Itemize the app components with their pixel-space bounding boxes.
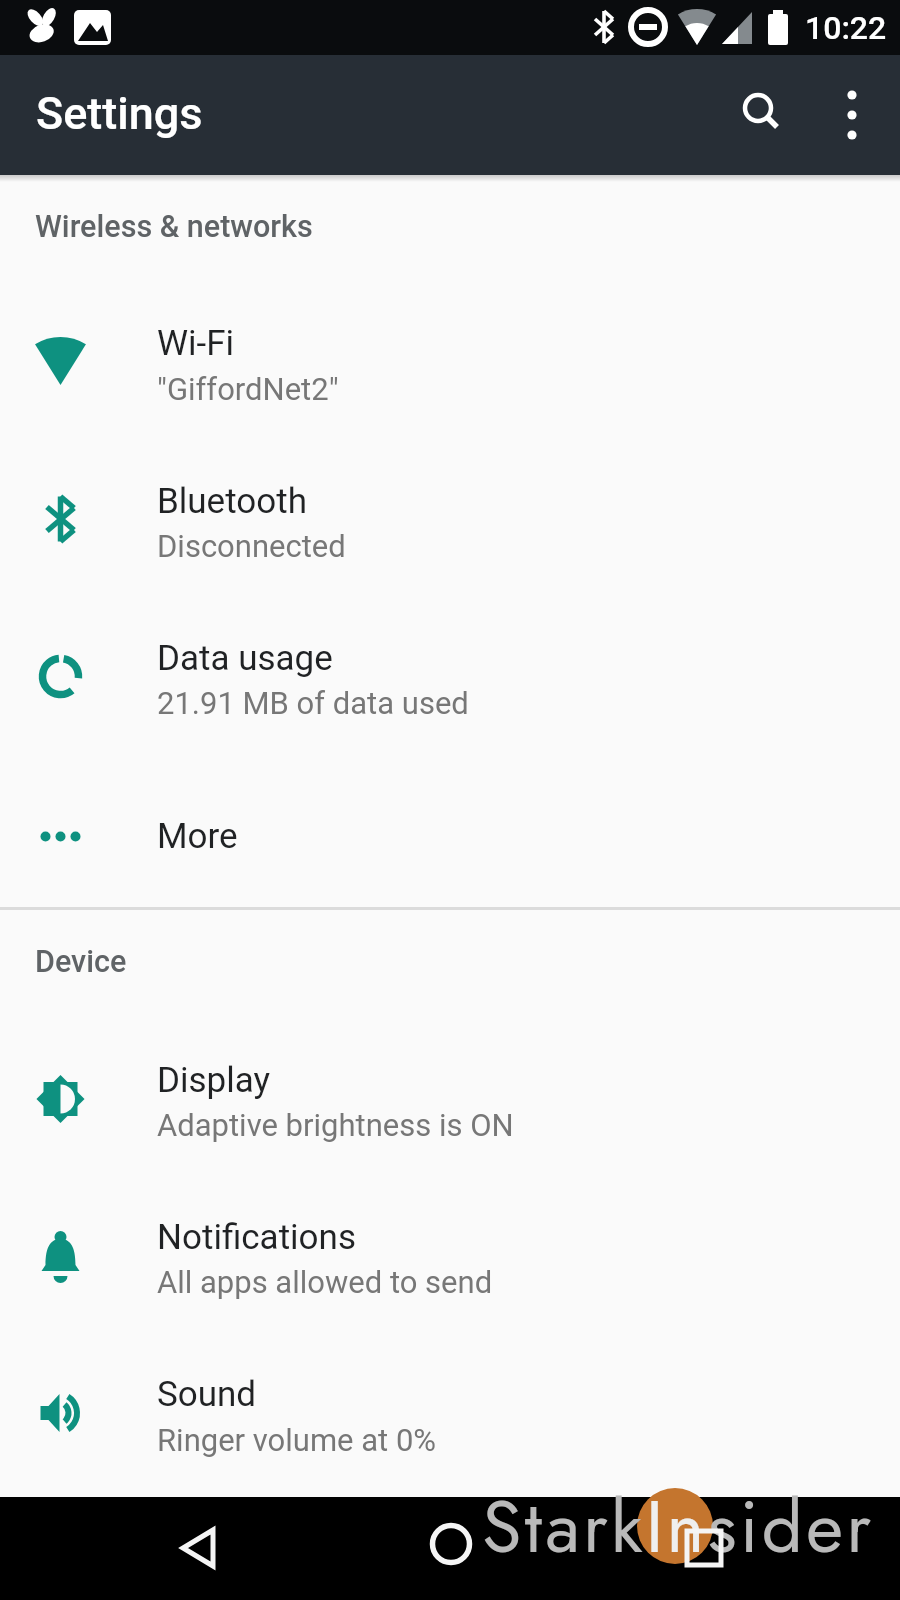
button[interactable] (0, 1021, 900, 1178)
staticText: Data usage (157, 638, 333, 679)
button[interactable] (733, 85, 789, 141)
staticText: Device (35, 944, 127, 980)
button[interactable] (0, 753, 900, 910)
staticText: Display (157, 1060, 271, 1101)
staticText: 21.91 MB of data used (157, 685, 469, 721)
button[interactable] (0, 1178, 900, 1335)
staticText: Settings (36, 87, 203, 140)
staticText: Disconnected (157, 528, 346, 564)
button[interactable] (413, 1510, 488, 1585)
button[interactable] (824, 85, 880, 141)
button[interactable] (0, 439, 900, 596)
staticText: Bluetooth (157, 481, 307, 522)
button[interactable] (0, 282, 900, 439)
button[interactable] (0, 596, 900, 753)
staticText: StarkInsider (482, 1475, 875, 1579)
staticText: More (157, 816, 238, 857)
staticText: Sound (157, 1374, 257, 1415)
button[interactable] (0, 1335, 900, 1492)
button[interactable] (160, 1510, 235, 1585)
staticText: Notifications (157, 1217, 356, 1258)
staticText: All apps allowed to send (157, 1264, 493, 1300)
staticText: Wireless & networks (35, 209, 313, 245)
staticText: Ringer volume at 0% (157, 1422, 437, 1458)
staticText: 10:22 (805, 9, 887, 47)
staticText: Adaptive brightness is ON (157, 1107, 514, 1143)
button[interactable] (666, 1510, 741, 1585)
staticText: Wi-Fi (157, 323, 235, 364)
staticText: "GiffordNet2" (157, 371, 339, 407)
